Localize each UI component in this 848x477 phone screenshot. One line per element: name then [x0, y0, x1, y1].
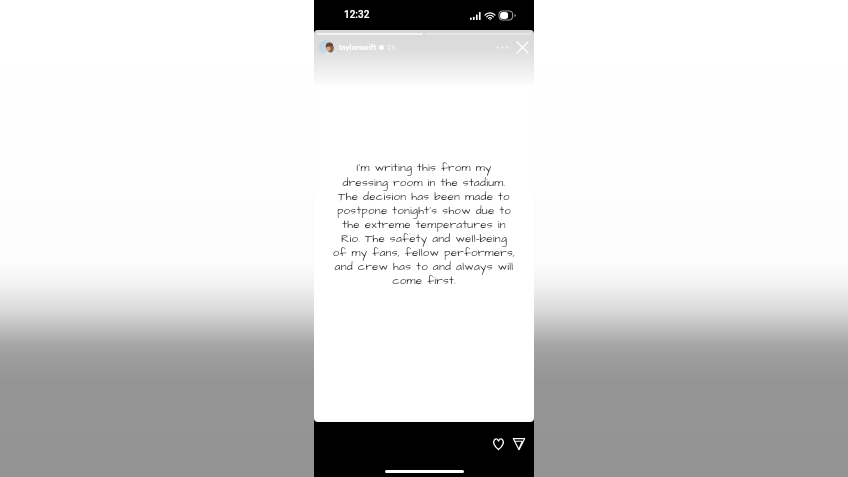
button[interactable]: Like: [489, 434, 508, 453]
button[interactable]: Story from taylorswift, tap to advance: [314, 30, 534, 422]
button[interactable]: Close: [516, 41, 529, 54]
staticText: 2h: [387, 43, 396, 52]
button[interactable]: Send: [509, 434, 528, 453]
staticText: 12:32: [344, 9, 370, 21]
button[interactable]: More options: [495, 40, 510, 55]
staticText: I'm writing this from my dressing room i…: [314, 160, 534, 289]
staticText: taylorswift: [339, 43, 377, 52]
button[interactable]: taylorswift profile photo: [319, 40, 334, 55]
